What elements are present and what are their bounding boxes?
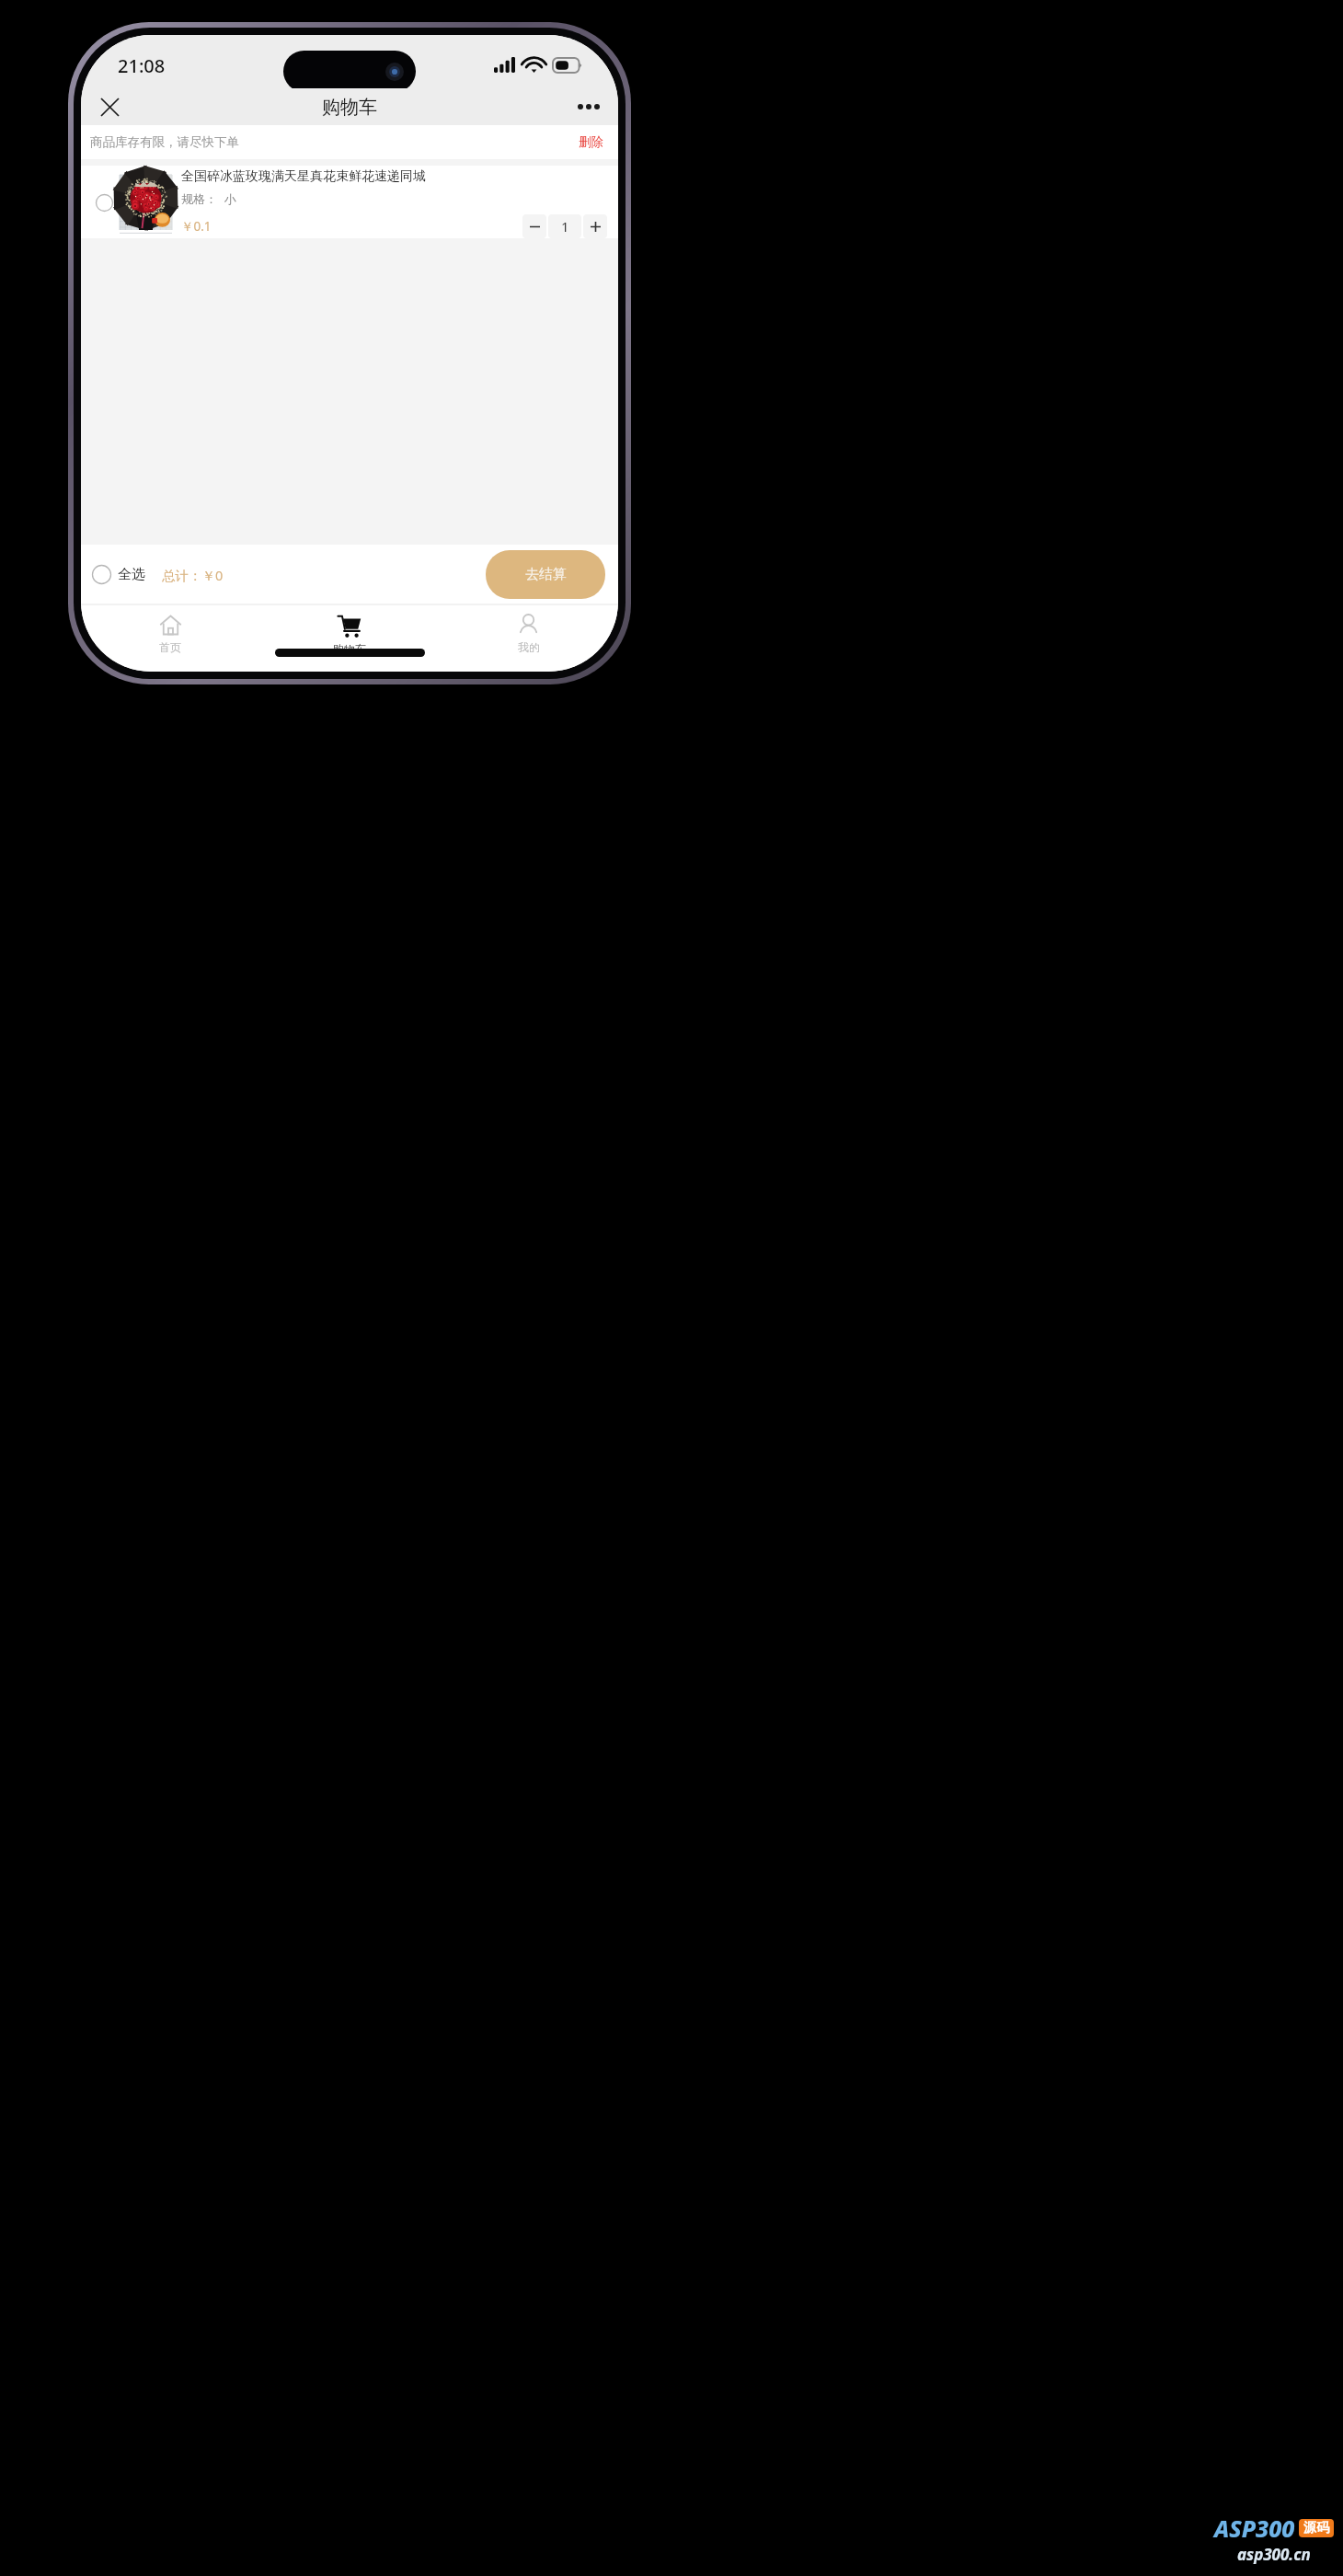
button[interactable]: 全选: [90, 559, 147, 590]
button[interactable]: Select item: [88, 187, 120, 218]
staticText: 我的: [518, 640, 540, 654]
button[interactable]: 删除: [573, 131, 609, 154]
staticText: 总计：￥0: [162, 566, 224, 584]
button[interactable]: 1: [548, 214, 581, 238]
staticText: 规格：: [181, 191, 217, 206]
button[interactable]: 去结算: [486, 550, 605, 599]
button[interactable]: [583, 214, 607, 238]
staticText: asp300.cn: [1237, 2544, 1311, 2565]
staticText: 购物车: [333, 642, 366, 656]
staticText: 购物车: [322, 96, 377, 119]
staticText: 1: [561, 217, 569, 236]
staticText: ASP300: [1214, 2513, 1295, 2544]
button[interactable]: [522, 214, 546, 238]
staticText: 源码: [1303, 2520, 1329, 2536]
staticText: 去结算: [525, 566, 567, 583]
staticText: 首页: [159, 640, 181, 654]
staticText: 21:08: [118, 53, 166, 78]
staticText: 商品库存有限，请尽快下单: [90, 134, 239, 150]
staticText: 小: [224, 191, 236, 206]
button[interactable]: 我的: [439, 612, 618, 672]
button[interactable]: 首页: [81, 612, 259, 672]
button[interactable]: 购物车: [259, 612, 439, 672]
button[interactable]: Close: [93, 90, 126, 123]
button[interactable]: More options: [572, 90, 605, 123]
button[interactable]: Product image: [120, 175, 172, 230]
staticText: 删除: [579, 134, 603, 150]
staticText: 全选: [118, 566, 145, 583]
staticText: 全国碎冰蓝玫瑰满天星真花束鲜花速递同城: [181, 168, 426, 185]
staticText: ￥0.1: [181, 218, 212, 235]
